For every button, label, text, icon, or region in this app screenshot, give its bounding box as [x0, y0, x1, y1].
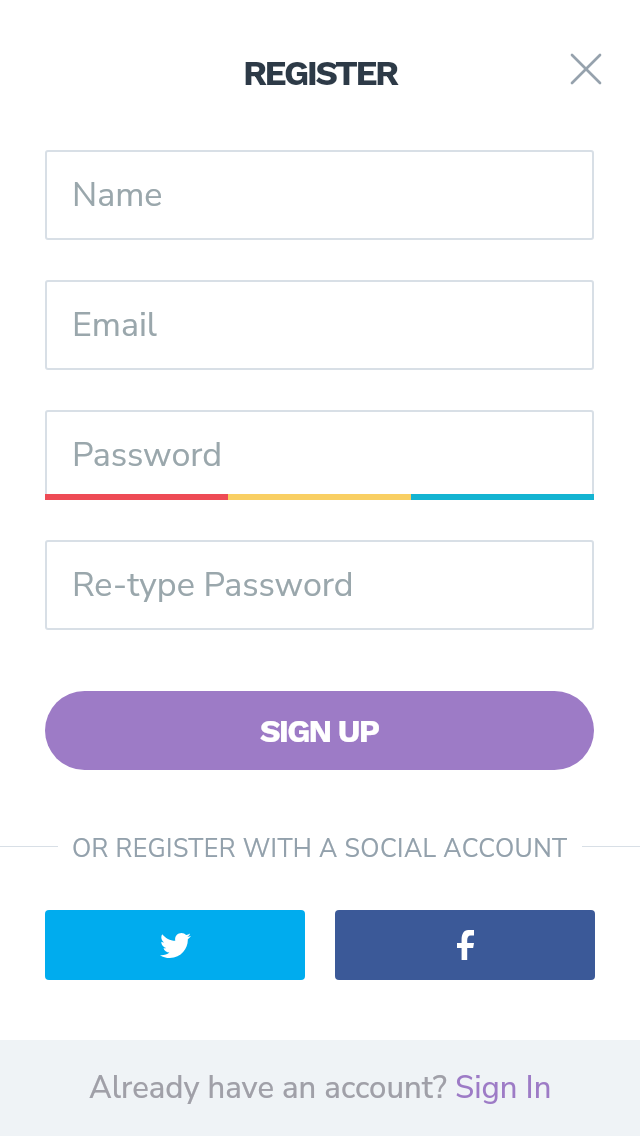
- button[interactable]: Register with Facebook: [335, 910, 595, 980]
- button[interactable]: Sign In: [455, 1067, 552, 1109]
- staticText: OR REGISTER WITH A SOCIAL ACCOUNT: [72, 832, 568, 860]
- staticText: Re-type Password: [72, 562, 354, 608]
- staticText: REGISTER: [243, 52, 397, 93]
- staticText: Name: [72, 172, 163, 218]
- staticText: Already have an account?: [89, 1067, 455, 1109]
- button[interactable]: Register with Twitter: [45, 910, 305, 980]
- button[interactable]: Email: [45, 280, 594, 370]
- staticText: SIGN UP: [260, 712, 379, 750]
- button[interactable]: SIGN UP: [45, 691, 594, 770]
- staticText: Sign In: [455, 1067, 552, 1109]
- button[interactable]: Name: [45, 150, 594, 240]
- button[interactable]: Password: [45, 410, 594, 500]
- button[interactable]: Re-type Password: [45, 540, 594, 630]
- staticText: Email: [72, 302, 157, 348]
- staticText: Password: [72, 432, 223, 478]
- button[interactable]: Close: [558, 41, 614, 97]
